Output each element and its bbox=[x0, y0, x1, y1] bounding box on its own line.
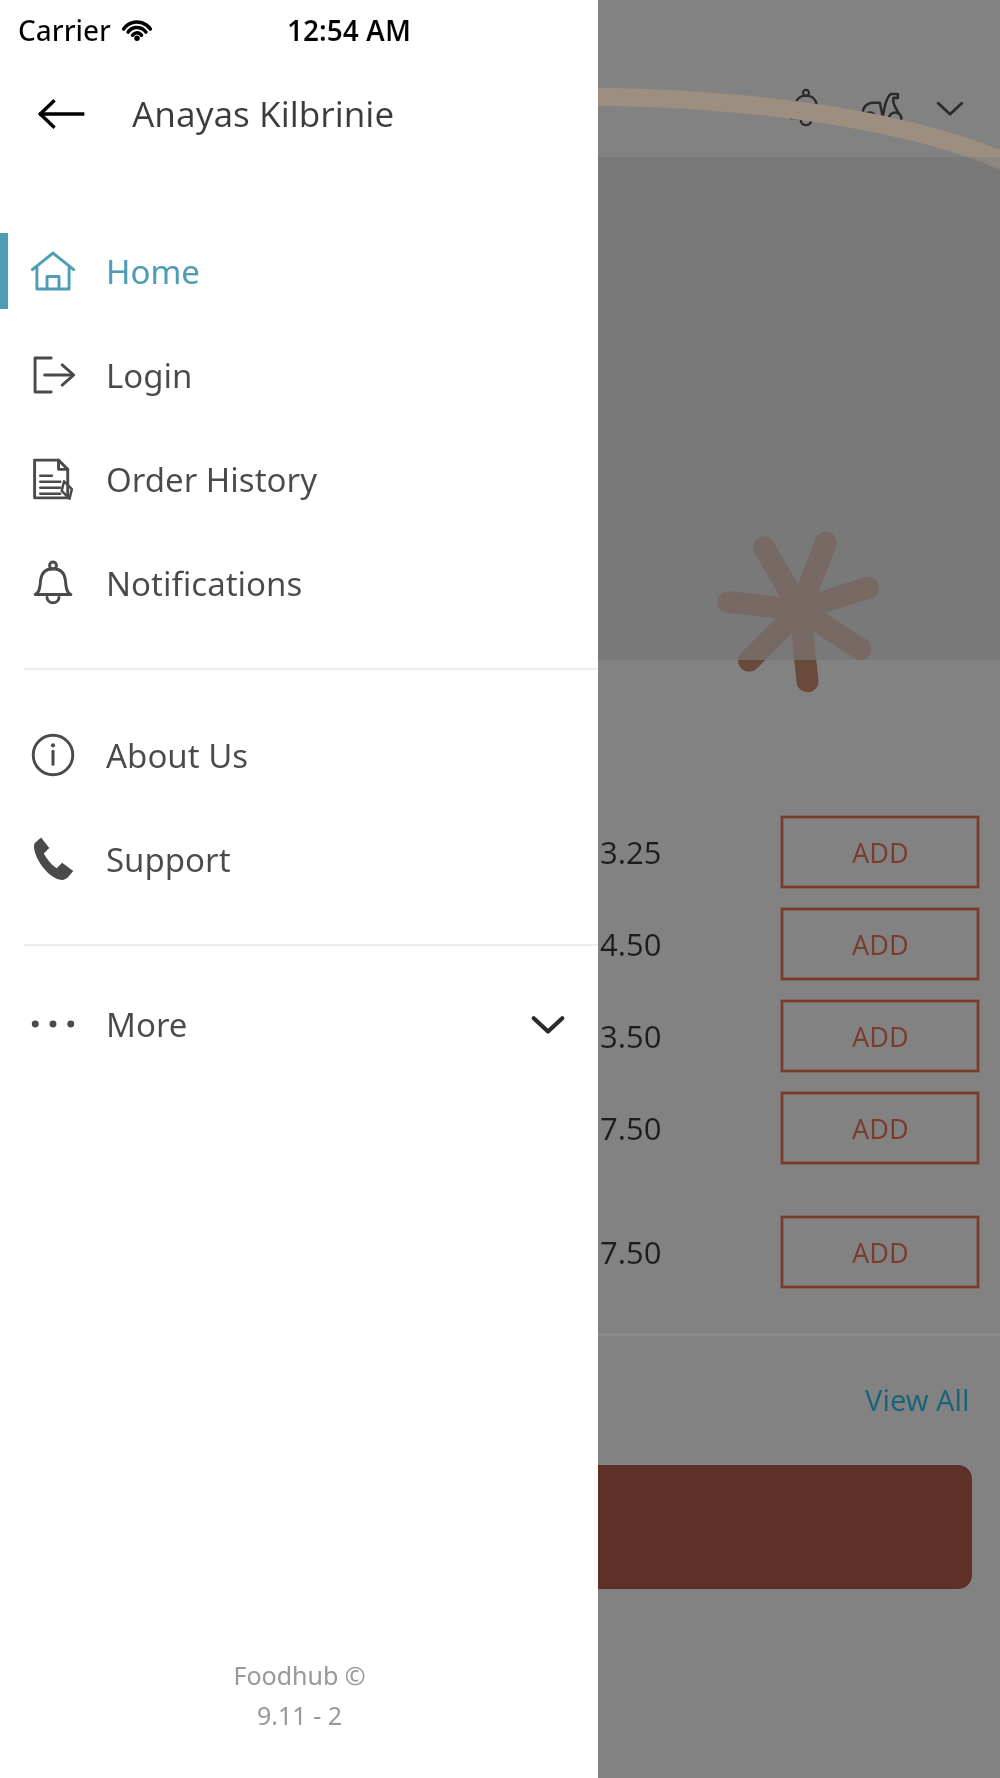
staticText: 3.25 bbox=[600, 831, 662, 873]
staticText: 7.50 bbox=[600, 1231, 662, 1273]
staticText: ADD bbox=[852, 1234, 909, 1271]
button[interactable]: Delivery bbox=[854, 80, 910, 136]
button[interactable]: ADD bbox=[782, 817, 978, 887]
staticText: Order History bbox=[106, 457, 317, 502]
button[interactable]: ADD bbox=[782, 909, 978, 979]
button[interactable]: ADD bbox=[782, 1001, 978, 1071]
staticText: 7.50 bbox=[600, 1107, 662, 1149]
staticText: About Us bbox=[106, 733, 249, 778]
button[interactable]: Home bbox=[0, 219, 598, 323]
button[interactable]: ADD bbox=[782, 1217, 978, 1287]
staticText: 4.50 bbox=[600, 923, 662, 965]
button[interactable]: Login bbox=[0, 323, 598, 427]
button[interactable]: Support bbox=[0, 807, 598, 911]
button[interactable]: Back bbox=[22, 75, 100, 153]
button[interactable]: More bbox=[0, 972, 598, 1076]
button[interactable]: ADD bbox=[782, 1093, 978, 1163]
staticText: 9.11 - 2 bbox=[257, 1698, 342, 1732]
button[interactable] bbox=[28, 1465, 972, 1589]
staticText: 12:54 AM bbox=[287, 11, 411, 49]
button[interactable]: View All bbox=[865, 1380, 970, 1419]
staticText: Notifications bbox=[106, 561, 303, 606]
staticText: Carrier bbox=[18, 11, 111, 49]
button[interactable]: Expand bbox=[924, 82, 976, 134]
staticText: ADD bbox=[852, 834, 909, 871]
staticText: Support bbox=[106, 837, 231, 882]
staticText: Home bbox=[106, 249, 200, 294]
button[interactable]: About Us bbox=[0, 703, 598, 807]
staticText: ADD bbox=[852, 926, 909, 963]
staticText: Login bbox=[106, 353, 193, 398]
staticText: ADD bbox=[852, 1110, 909, 1147]
button[interactable]: Order History bbox=[0, 427, 598, 531]
staticText: 3.50 bbox=[600, 1015, 662, 1057]
staticText: View All bbox=[865, 1380, 970, 1419]
staticText: Foodhub © bbox=[233, 1658, 366, 1692]
staticText: More bbox=[106, 1002, 188, 1047]
staticText: ADD bbox=[852, 1018, 909, 1055]
button[interactable]: Notifications bbox=[778, 80, 834, 136]
button[interactable]: Notifications bbox=[0, 531, 598, 635]
staticText: Anayas Kilbrinie bbox=[132, 90, 395, 138]
